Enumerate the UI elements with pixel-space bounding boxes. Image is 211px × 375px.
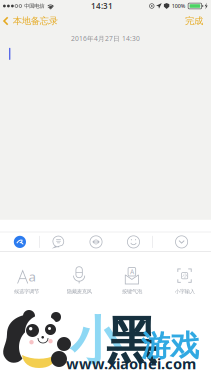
button[interactable]: 本地备忘录 <box>0 12 58 30</box>
staticText: 候选字调节 <box>14 288 39 295</box>
staticText: 按键气泡 <box>122 288 142 295</box>
button[interactable]: 隐藏麦克风 <box>53 252 106 300</box>
staticText: 完成 <box>185 15 203 27</box>
staticText: 中国电信 <box>24 3 44 9</box>
button[interactable]: 小 <box>158 252 211 300</box>
staticText: 小 <box>182 272 187 279</box>
button[interactable]: 收起键盘 <box>153 232 211 251</box>
button[interactable]: 输入法设置 <box>0 232 39 251</box>
staticText: 黑 <box>106 310 157 372</box>
staticText: www.xiaohei.com <box>66 354 196 373</box>
staticText: 游戏 <box>141 328 199 364</box>
staticText: 100% <box>172 2 186 10</box>
button[interactable]: A <box>105 252 158 300</box>
staticText: 小 <box>70 310 121 372</box>
button[interactable]: 表情 <box>115 232 152 251</box>
button[interactable]: 完成 <box>185 12 211 30</box>
staticText: a <box>29 267 36 285</box>
staticText: 14:31 <box>91 1 113 11</box>
button[interactable]: a <box>0 252 53 300</box>
staticText: 本地备忘录 <box>13 15 58 27</box>
staticText: 隐藏麦克风 <box>67 288 92 295</box>
staticText: A <box>130 267 134 276</box>
button[interactable]: 移动光标 <box>77 232 115 251</box>
staticText: 2016年4月27日 14:30 <box>71 34 140 43</box>
staticText: 小字输入 <box>175 288 195 295</box>
button[interactable]: 语音反馈 <box>40 232 77 251</box>
